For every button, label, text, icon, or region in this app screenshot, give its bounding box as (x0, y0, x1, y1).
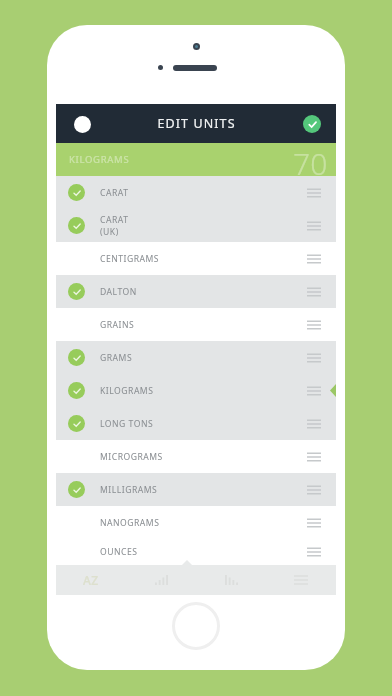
button[interactable]: Reorder NANOGRAMS (304, 513, 324, 533)
staticText: AZ (83, 572, 99, 588)
staticText: OUNCES (100, 546, 138, 558)
staticText: KILOGRAMS (69, 153, 130, 166)
button[interactable]: LONG TONS (56, 407, 336, 440)
button[interactable]: CARAT (56, 209, 336, 242)
button[interactable]: MICROGRAMS (56, 440, 336, 473)
button[interactable]: Reorder LONG TONS (304, 414, 324, 434)
button[interactable]: DALTON (56, 275, 336, 308)
button[interactable]: CENTIGRAMS (56, 242, 336, 275)
button[interactable]: CARAT (56, 176, 336, 209)
staticText: EDIT UNITS (157, 115, 236, 132)
button[interactable]: KILOGRAMS (56, 374, 336, 407)
staticText: MICROGRAMS (100, 451, 163, 463)
staticText: 70 (293, 143, 328, 176)
staticText: KILOGRAMS (100, 385, 154, 397)
staticText: GRAMS (100, 352, 133, 364)
staticText: GRAINS (100, 319, 135, 331)
button[interactable]: Reorder GRAMS (304, 348, 324, 368)
button[interactable]: KILOGRAMS (56, 143, 336, 176)
button[interactable]: AZ (56, 565, 126, 595)
staticText: MILLIGRAMS (100, 484, 158, 496)
button[interactable]: Reorder CENTIGRAMS (304, 249, 324, 269)
button[interactable]: Cancel (65, 107, 99, 141)
button[interactable]: Reorder KILOGRAMS (304, 381, 324, 401)
button[interactable]: GRAMS (56, 341, 336, 374)
button[interactable]: NANOGRAMS (56, 506, 336, 539)
staticText: CENTIGRAMS (100, 253, 160, 265)
button[interactable]: GRAINS (56, 308, 336, 341)
staticText: CARAT (100, 214, 129, 226)
button[interactable]: Confirm (295, 107, 329, 141)
staticText: CARAT (100, 187, 129, 199)
staticText: LONG TONS (100, 418, 154, 430)
button[interactable]: MILLIGRAMS (56, 473, 336, 506)
button[interactable]: Reorder CARAT (304, 216, 324, 236)
button[interactable]: Reorder DALTON (304, 282, 324, 302)
button[interactable]: Reorder MICROGRAMS (304, 447, 324, 467)
staticText: (UK) (100, 226, 119, 238)
staticText: DALTON (100, 286, 137, 298)
button[interactable]: Reorder OUNCES (304, 542, 324, 562)
staticText: NANOGRAMS (100, 517, 160, 529)
button[interactable]: Reorder MILLIGRAMS (304, 480, 324, 500)
button[interactable]: Reorder GRAINS (304, 315, 324, 335)
button[interactable]: OUNCES (56, 539, 336, 565)
button[interactable]: Reorder CARAT (304, 183, 324, 203)
